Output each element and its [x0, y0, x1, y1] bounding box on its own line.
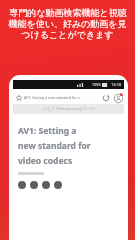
staticText: 13:18: [111, 82, 122, 87]
staticText: new standard for: [18, 140, 91, 152]
button[interactable]: Share option: [18, 181, 26, 189]
button[interactable]: Share option: [42, 181, 50, 189]
staticText: video codecs: [18, 155, 73, 167]
staticText: AV1: Setting a: [18, 125, 77, 137]
staticText: new standard for: [18, 140, 91, 152]
button[interactable]: Reload: [100, 92, 111, 103]
staticText: パイプ Videoarming ページ: [42, 106, 96, 112]
button[interactable]: AV1: Setting a new standard for v: [13, 92, 98, 103]
button[interactable]: Share option: [30, 181, 38, 189]
staticText: 機能を使い、好みの動画を見: [8, 18, 127, 29]
staticText: つけることができます: [21, 29, 114, 40]
staticText: 専門的な動画検索機能と視聴: [9, 7, 127, 18]
button[interactable]: Share option: [54, 181, 62, 189]
staticText: AV1: Setting a: [18, 125, 77, 137]
staticText: video codecs: [18, 155, 73, 167]
staticText: AV1: Setting a new standard for v: [24, 95, 80, 100]
staticText: 100%: [92, 82, 101, 87]
button[interactable]: Account: [112, 92, 124, 104]
